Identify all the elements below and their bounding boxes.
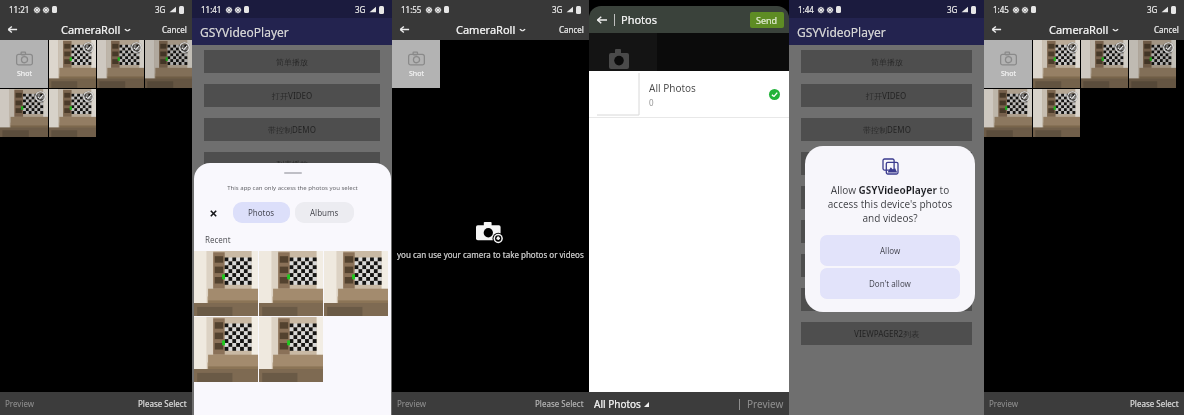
button[interactable]: 无缝切换 [801,220,972,243]
button[interactable] [194,317,258,382]
button[interactable]: 列表播放 [801,152,972,175]
button[interactable] [145,40,192,88]
staticText: All Photos [649,81,696,95]
button[interactable]: Shot [0,40,48,88]
staticText: 带控制DEMO [863,124,911,135]
staticText: Albums [310,207,339,218]
button[interactable]: Cancel [162,24,187,35]
button[interactable] [984,89,1032,137]
button[interactable]: 详情页播放 [801,186,972,209]
button[interactable]: 打开VIDEO [204,84,380,107]
button[interactable] [194,251,258,316]
button[interactable] [324,251,388,316]
staticText: 简单播放 [871,57,903,67]
button[interactable]: 带控制DEMO [801,118,972,141]
button[interactable]: LIST全屏和小窗口列表 [204,288,380,311]
staticText: Shot [17,69,32,79]
staticText: VIEWPAGER2列表 [854,328,920,339]
button[interactable]: Please Select [535,398,584,409]
button[interactable]: Preview [5,398,35,409]
staticText: Send [756,14,778,26]
staticText: Preview [5,398,35,409]
button[interactable]: LIST全屏和小窗口列表 [801,288,972,311]
staticText: All Photos [594,397,641,411]
staticText: 3G [947,4,958,15]
staticText: 无缝切换 [871,227,903,237]
staticText: Shot [409,69,424,79]
staticText: CameraRoll [456,22,516,37]
staticText: 详情页播放 [272,193,312,203]
staticText: 11:55 [401,4,422,15]
button[interactable]: All Photos [589,71,789,117]
button[interactable] [97,40,144,88]
button[interactable]: 无缝切换 [204,220,380,243]
staticText: Preview [747,397,784,411]
button[interactable] [1033,89,1080,137]
staticText: Cancel [559,24,584,35]
button[interactable]: VIEWPAGER2列表 [204,322,380,345]
button[interactable]: Preview [397,398,427,409]
button[interactable]: Shot [392,40,440,88]
button[interactable]: CameraRoll [456,22,526,37]
button[interactable]: Close [204,204,222,222]
staticText: Photos [248,207,275,218]
staticText: 打开VIDEO [866,90,907,101]
button[interactable]: Albums [295,202,354,223]
button[interactable]: Allow [820,235,960,266]
button[interactable]: Please Select [138,398,187,409]
staticText: 11:41 [201,4,222,15]
button[interactable]: Photos [233,202,290,223]
staticText: Please Select [138,398,187,409]
button[interactable]: Cancel [559,24,584,35]
button[interactable]: 带控制DEMO [204,118,380,141]
staticText: 0 [649,97,654,108]
staticText: Cancel [1154,24,1179,35]
button[interactable]: CameraRoll [61,22,131,37]
staticText: Please Select [1130,398,1179,409]
staticText: 11:21 [9,4,30,15]
button[interactable]: Preview [989,398,1019,409]
button[interactable] [0,89,48,137]
button[interactable]: 列表播放 [204,152,380,175]
button[interactable] [49,40,96,88]
staticText: you can use your camera to take photos o… [397,249,584,260]
staticText: 详情页播放 [867,193,907,203]
button[interactable] [1081,40,1128,88]
button[interactable]: Shot [984,40,1032,88]
button[interactable] [1129,40,1176,88]
button[interactable]: Back [396,21,412,37]
button[interactable]: Send [756,14,778,26]
button[interactable] [259,251,323,316]
button[interactable] [49,89,96,137]
button[interactable]: 简单播放 [801,50,972,73]
staticText: 3G [1147,4,1158,15]
staticText: 1:45 [993,4,1009,15]
button[interactable] [1033,40,1080,88]
staticText: CameraRoll [1049,22,1109,37]
button[interactable]: CameraRoll [1049,22,1119,37]
staticText: LIST列表 [276,260,308,271]
button[interactable]: Back [988,21,1004,37]
staticText: CameraRoll [61,22,121,37]
button[interactable]: LIST列表 [204,254,380,277]
button[interactable]: 打开VIDEO [801,84,972,107]
button[interactable]: Back [4,21,20,37]
button[interactable]: Cancel [1154,24,1179,35]
button[interactable]: Preview [747,397,784,411]
staticText: Please Select [535,398,584,409]
button[interactable]: All Photos [594,397,649,411]
button[interactable]: 简单播放 [204,50,380,73]
staticText: 3G [552,4,563,15]
button[interactable]: LIST列表 [801,254,972,277]
staticText: GSYVideoPlayer [797,24,886,40]
button[interactable]: Back [594,12,609,27]
button[interactable]: Don't allow [820,268,960,299]
button[interactable] [259,317,323,382]
button[interactable]: Please Select [1130,398,1179,409]
staticText: VIEWPAGER2列表 [259,328,325,339]
button[interactable]: 详情页播放 [204,186,380,209]
button[interactable]: VIEWPAGER2列表 [801,322,972,345]
staticText: GSYVideoPlayer [200,24,289,40]
staticText: LIST全屏和小窗口列表 [847,294,927,305]
